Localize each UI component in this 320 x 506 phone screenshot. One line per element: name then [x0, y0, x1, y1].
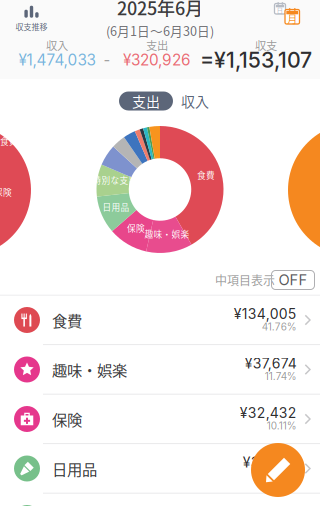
staticText: 収支推移	[15, 21, 47, 32]
button[interactable]: 収支推移	[1, 4, 61, 34]
staticText: 保険	[0, 186, 12, 198]
staticText: ¥320,926	[123, 51, 191, 69]
staticText: 9.67%	[266, 469, 297, 481]
button[interactable]	[0, 494, 320, 506]
button[interactable]: Add entry	[251, 443, 305, 497]
button[interactable]: 収入	[177, 91, 213, 110]
staticText: ¥32,432	[240, 404, 297, 421]
staticText: 趣味・娯楽	[52, 358, 127, 381]
staticText: 収入	[46, 37, 68, 53]
staticText: 月	[287, 11, 297, 26]
staticText: 10.11%	[267, 420, 297, 432]
button[interactable]: 食費	[0, 296, 320, 344]
button[interactable]: 日用品	[0, 444, 320, 493]
staticText: 収支	[255, 37, 277, 53]
button[interactable]: 支出	[119, 91, 173, 110]
button[interactable]: 保険	[0, 395, 320, 443]
staticText: 収入	[181, 91, 209, 111]
staticText: =¥1,153,107	[200, 47, 312, 73]
staticText: ¥1,474,033	[18, 51, 95, 69]
staticText: ¥37,674	[245, 355, 297, 372]
staticText: (6月1日〜6月30日)	[106, 21, 214, 40]
staticText: 食費	[0, 135, 18, 147]
staticText: 保険	[127, 222, 145, 234]
staticText: 日用品	[52, 457, 97, 480]
staticText: 食費	[52, 309, 82, 331]
staticText: 趣味・娯楽	[144, 228, 189, 240]
staticText: 保険	[52, 408, 82, 430]
staticText: ¥31,020	[243, 454, 297, 471]
staticText: 食費	[197, 169, 215, 181]
button[interactable]: 趣味・娯楽	[0, 345, 320, 394]
staticText: OFF	[278, 271, 307, 289]
staticText: ¥134,005	[234, 305, 297, 322]
staticText: 日用品	[102, 201, 129, 213]
staticText: 中項目表示	[215, 271, 275, 289]
staticText: 支出	[132, 91, 160, 111]
staticText: 特別な支出	[92, 174, 137, 186]
staticText: 41.76%	[262, 321, 297, 333]
staticText: 日	[276, 5, 283, 15]
staticText: 支出	[146, 37, 168, 53]
staticText: 2025年6月	[117, 0, 203, 20]
button[interactable]: Choose month	[274, 2, 300, 25]
staticText: -	[103, 51, 110, 69]
staticText: 11.74%	[265, 370, 297, 382]
button[interactable]: OFF	[271, 270, 314, 289]
